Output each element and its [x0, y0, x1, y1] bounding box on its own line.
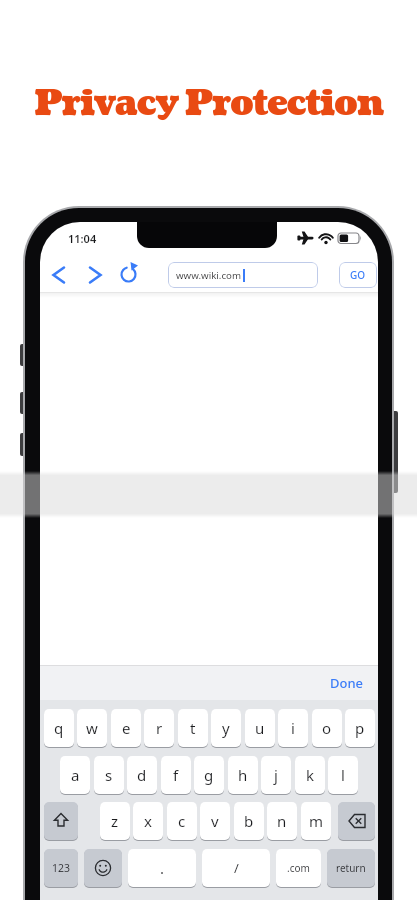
staticText: f [173, 765, 179, 785]
button[interactable]: m [301, 802, 331, 840]
button[interactable]: d [127, 756, 157, 794]
staticText: p [355, 718, 365, 738]
button[interactable]: f [161, 756, 191, 794]
button[interactable]: k [295, 756, 325, 794]
button[interactable]: GO [339, 262, 377, 288]
staticText: y [222, 718, 230, 738]
staticText: e [122, 718, 131, 738]
staticText: w [86, 718, 98, 738]
button[interactable]: return [327, 849, 375, 887]
button[interactable]: n [267, 802, 297, 840]
button[interactable]: e [111, 709, 141, 747]
staticText: n [277, 811, 287, 831]
button[interactable]: .com [276, 849, 321, 887]
button[interactable] [338, 802, 375, 840]
button[interactable]: l [328, 756, 358, 794]
button[interactable]: r [144, 709, 174, 747]
staticText: u [255, 718, 265, 738]
button[interactable]: www.wiki.com [168, 262, 318, 288]
button[interactable]: j [261, 756, 291, 794]
staticText: / [234, 859, 239, 877]
button[interactable]: s [94, 756, 124, 794]
button[interactable] [84, 849, 122, 887]
staticText: . [160, 858, 165, 878]
button[interactable]: t [178, 709, 208, 747]
staticText: s [105, 765, 113, 785]
staticText: b [244, 811, 254, 831]
button[interactable]: a [60, 756, 90, 794]
staticText: o [322, 718, 332, 738]
button[interactable]: z [100, 802, 130, 840]
button[interactable]: o [312, 709, 342, 747]
staticText: 11:04 [68, 231, 97, 246]
staticText: j [274, 765, 278, 785]
button[interactable] [40, 260, 160, 290]
staticText: g [204, 765, 214, 785]
button[interactable]: b [234, 802, 264, 840]
staticText: GO [350, 268, 366, 282]
button[interactable]: y [211, 709, 241, 747]
staticText: .com [287, 861, 310, 875]
staticText: 123 [52, 861, 71, 875]
staticText: h [238, 765, 248, 785]
staticText: a [71, 765, 80, 785]
button[interactable]: Done [330, 674, 364, 692]
button[interactable]: c [167, 802, 197, 840]
staticText: c [178, 811, 186, 831]
button[interactable]: x [133, 802, 163, 840]
button[interactable]: q [44, 709, 74, 747]
staticText: d [137, 765, 147, 785]
staticText: v [211, 811, 219, 831]
button[interactable]: h [228, 756, 258, 794]
staticText: t [190, 718, 196, 738]
button[interactable]: / [202, 849, 270, 887]
staticText: m [309, 811, 324, 831]
button[interactable]: 123 [44, 849, 78, 887]
staticText: return [336, 861, 366, 875]
button[interactable]: i [278, 709, 308, 747]
staticText: Privacy Protection [0, 79, 417, 128]
staticText: q [54, 718, 64, 738]
staticText: r [156, 718, 163, 738]
button[interactable] [44, 802, 78, 840]
staticText: k [306, 765, 315, 785]
staticText: Done [330, 674, 364, 692]
button[interactable]: g [194, 756, 224, 794]
button[interactable]: w [77, 709, 107, 747]
staticText: l [341, 765, 345, 785]
button[interactable]: p [345, 709, 375, 747]
button[interactable]: v [200, 802, 230, 840]
staticText: z [111, 811, 119, 831]
staticText: i [291, 718, 295, 738]
button[interactable]: . [128, 849, 196, 887]
button[interactable]: u [245, 709, 275, 747]
staticText: x [144, 811, 152, 831]
staticText: www.wiki.com [176, 269, 242, 282]
